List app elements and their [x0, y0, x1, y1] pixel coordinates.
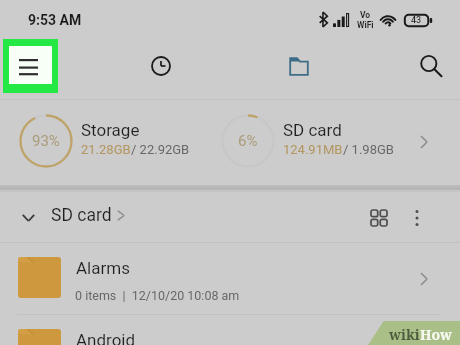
button[interactable]: Search [407, 40, 451, 84]
staticText: 93% [32, 132, 60, 150]
staticText: Android [76, 330, 136, 345]
staticText: 9:53 AM [28, 12, 82, 28]
staticText: 43 [411, 15, 422, 26]
button[interactable]: Alarms [0, 243, 460, 314]
staticText: SD card [51, 205, 112, 226]
staticText: / 22.92GB [131, 142, 190, 157]
button[interactable]: SD card [51, 205, 125, 226]
button[interactable]: 6% [209, 100, 433, 186]
staticText: / 1.98GB [343, 142, 394, 157]
button[interactable]: Recent files [137, 42, 185, 90]
button[interactable]: Menu [3, 39, 58, 93]
staticText: SD card [283, 120, 342, 140]
staticText: 21.28GB [81, 142, 131, 157]
staticText: 0 items | 12/10/20 10:08 am [75, 288, 240, 303]
staticText: Storage [81, 120, 140, 140]
button[interactable]: More options [397, 198, 437, 238]
staticText: Vo [360, 10, 371, 20]
staticText: WiFi [357, 20, 374, 30]
button[interactable]: 93% [7, 100, 209, 186]
staticText: Alarms [76, 258, 130, 278]
staticText: 124.91MB [283, 142, 343, 157]
staticText: How [420, 325, 453, 344]
button[interactable]: Android [0, 315, 460, 345]
button[interactable]: Grid view [359, 198, 399, 238]
button[interactable]: Collapse [8, 196, 50, 238]
staticText: wiki [389, 325, 420, 344]
button[interactable]: Files [275, 42, 323, 90]
staticText: 6% [238, 132, 258, 150]
